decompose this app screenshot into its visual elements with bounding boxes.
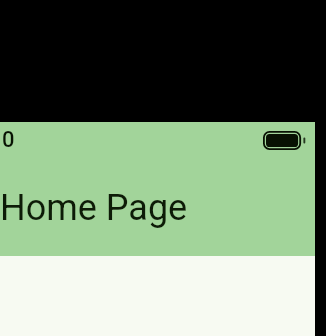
staticText: 0: [2, 127, 15, 153]
staticText: Home Page: [0, 187, 188, 229]
other: Battery full: [263, 131, 307, 150]
